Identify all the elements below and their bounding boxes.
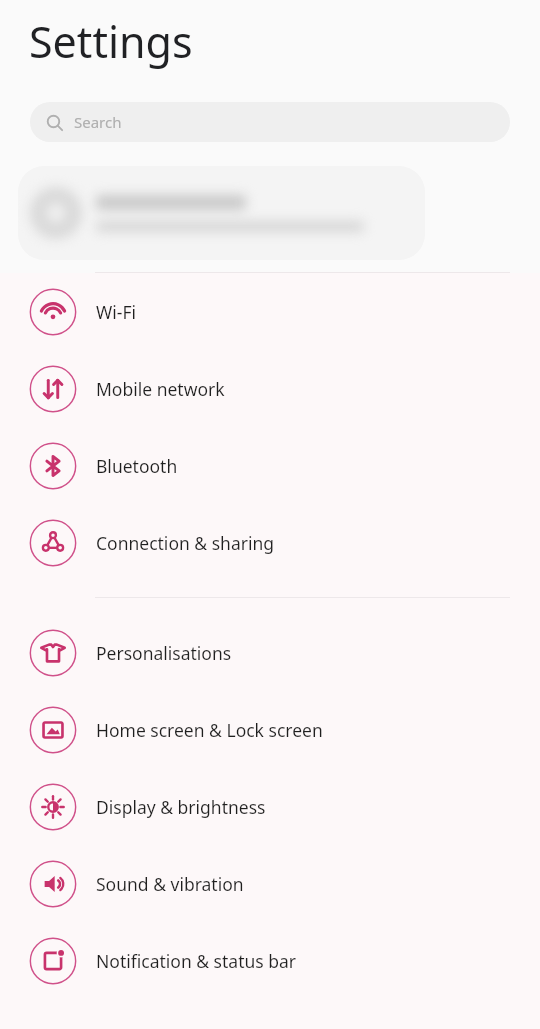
staticText: Sound & vibration — [96, 872, 244, 896]
staticText: Connection & sharing — [96, 531, 275, 555]
button[interactable]: Notification & status bar — [0, 922, 540, 999]
staticText: Home screen & Lock screen — [96, 718, 323, 742]
button[interactable]: Search — [30, 102, 510, 142]
staticText: Wi-Fi — [96, 300, 137, 324]
button[interactable]: Sound & vibration — [0, 845, 540, 922]
staticText: Display & brightness — [96, 795, 266, 819]
staticText: Mobile network — [96, 377, 225, 401]
button[interactable] — [18, 166, 425, 260]
staticText: Search — [74, 112, 122, 132]
staticText: Settings — [29, 12, 193, 71]
button[interactable]: Wi-Fi — [0, 273, 540, 350]
button[interactable]: Home screen & Lock screen — [0, 691, 540, 768]
button[interactable]: Display & brightness — [0, 768, 540, 845]
button[interactable]: Mobile network — [0, 350, 540, 427]
button[interactable]: Connection & sharing — [0, 504, 540, 581]
staticText: Personalisations — [96, 641, 232, 665]
button[interactable]: Bluetooth — [0, 427, 540, 504]
staticText: Notification & status bar — [96, 949, 297, 973]
staticText: Bluetooth — [96, 454, 178, 478]
button[interactable]: Personalisations — [0, 614, 540, 691]
